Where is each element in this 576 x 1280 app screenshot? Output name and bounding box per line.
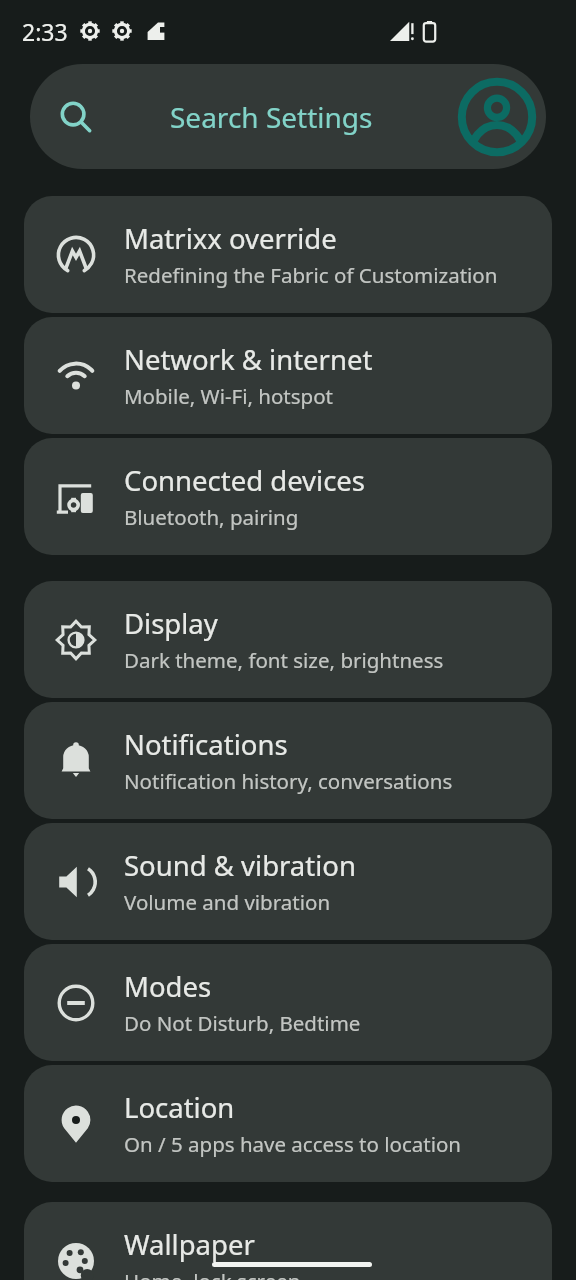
- button[interactable]: Modes: [24, 944, 552, 1061]
- staticText: Matrixx override: [124, 220, 337, 257]
- button[interactable]: Location: [24, 1065, 552, 1182]
- staticText: Location: [124, 1089, 235, 1126]
- staticText: Redefining the Fabric of Customization: [124, 261, 498, 289]
- staticText: On / 5 apps have access to location: [124, 1130, 461, 1158]
- button[interactable]: Wallpaper: [24, 1202, 552, 1280]
- staticText: Wallpaper: [124, 1226, 255, 1263]
- staticText: Mobile, Wi-Fi, hotspot: [124, 382, 333, 410]
- staticText: Bluetooth, pairing: [124, 503, 299, 531]
- staticText: Sound & vibration: [124, 847, 356, 884]
- staticText: Network & internet: [124, 341, 373, 378]
- button[interactable]: Network & internet: [24, 317, 552, 434]
- button[interactable]: Search Settings: [30, 64, 546, 169]
- staticText: Volume and vibration: [124, 888, 331, 916]
- staticText: Connected devices: [124, 462, 366, 499]
- button[interactable]: Matrixx override: [24, 196, 552, 313]
- staticText: Do Not Disturb, Bedtime: [124, 1009, 361, 1037]
- staticText: Home, lock screen: [124, 1267, 301, 1280]
- staticText: Display: [124, 605, 218, 642]
- button[interactable]: Sound & vibration: [24, 823, 552, 940]
- button[interactable]: Display: [24, 581, 552, 698]
- button[interactable]: Connected devices: [24, 438, 552, 555]
- button[interactable]: Notifications: [24, 702, 552, 819]
- staticText: Notification history, conversations: [124, 767, 453, 795]
- staticText: Notifications: [124, 726, 288, 763]
- staticText: 2:33: [22, 16, 68, 47]
- staticText: Search Settings: [170, 98, 373, 136]
- staticText: Modes: [124, 968, 212, 1005]
- staticText: Dark theme, font size, brightness: [124, 646, 444, 674]
